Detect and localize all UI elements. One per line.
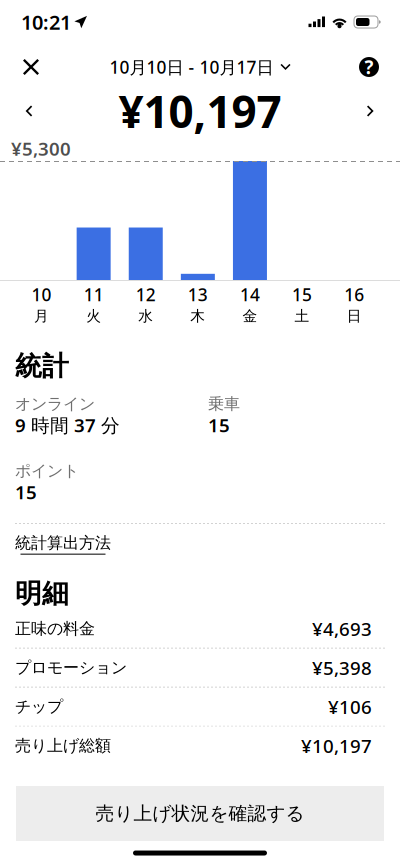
staticText: 統計 <box>15 350 69 382</box>
staticText: 12 <box>136 283 156 306</box>
staticText: 統計算出方法 <box>15 533 111 553</box>
button[interactable]: ヘルプ <box>338 44 400 90</box>
button[interactable]: 前の週 <box>0 90 58 132</box>
button[interactable]: 統計算出方法 <box>0 524 400 555</box>
staticText: 月 <box>34 307 49 325</box>
staticText: 乗車 <box>208 394 240 414</box>
staticText: 水 <box>138 307 153 325</box>
staticText: プロモーション <box>15 658 127 677</box>
staticText: 14 <box>240 283 260 306</box>
staticText: 土 <box>295 307 310 325</box>
staticText: ¥5,398 <box>312 655 372 680</box>
staticText: オンライン <box>15 394 95 414</box>
staticText: 日 <box>347 307 362 325</box>
staticText: 売り上げ状況を確認する <box>95 802 304 825</box>
staticText: ¥10,197 <box>118 82 281 140</box>
staticText: ¥5,300 <box>11 136 71 161</box>
staticText: 16 <box>344 283 364 306</box>
staticText: 15 <box>208 413 230 437</box>
button[interactable]: 売り上げ状況を確認する <box>16 786 384 841</box>
staticText: ¥4,693 <box>312 616 372 641</box>
staticText: 15 <box>15 480 37 504</box>
staticText: 明細 <box>15 577 69 610</box>
staticText: 11 <box>84 283 104 306</box>
staticText: ? <box>364 55 373 79</box>
button[interactable]: 閉じる <box>0 44 62 90</box>
staticText: 15 <box>292 283 312 306</box>
staticText: 金 <box>242 307 257 325</box>
staticText: 木 <box>190 307 205 325</box>
staticText: 火 <box>86 307 101 325</box>
staticText: チップ <box>15 697 63 716</box>
staticText: 13 <box>188 283 208 306</box>
staticText: ¥106 <box>328 694 372 719</box>
staticText: 10 <box>32 283 52 306</box>
button[interactable]: 次の週 <box>342 90 400 132</box>
staticText: 正味の料金 <box>15 619 95 638</box>
button[interactable]: 10月10日 - 10月17日 <box>109 44 290 90</box>
staticText: ポイント <box>15 461 79 481</box>
staticText: 10月10日 - 10月17日 <box>109 55 273 78</box>
staticText: 9 時間 37 分 <box>15 413 120 437</box>
staticText: ¥10,197 <box>301 733 372 758</box>
staticText: 売り上げ総額 <box>15 736 111 755</box>
staticText: 10:21 <box>21 9 71 35</box>
